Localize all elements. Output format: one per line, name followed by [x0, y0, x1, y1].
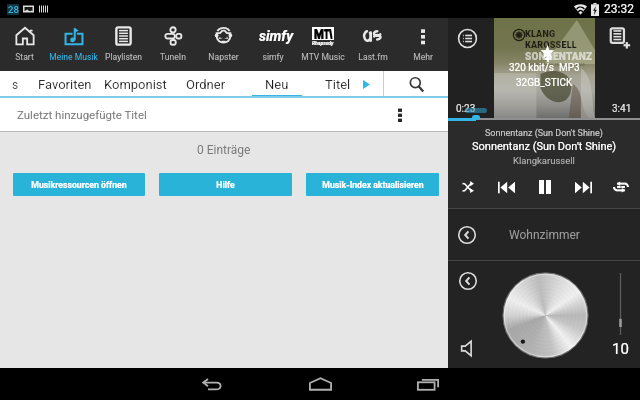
staticText: TuneIn: [160, 52, 186, 62]
button[interactable]: Mehr Optionen: [380, 98, 420, 131]
button[interactable]: Meine Musik: [49, 18, 98, 71]
staticText: Titel: [325, 77, 351, 92]
button[interactable]: Playlisten: [98, 18, 148, 71]
staticText: Favoriten: [38, 77, 92, 92]
button[interactable]: Titel: [312, 71, 383, 98]
staticText: Rhapsody: [312, 40, 334, 46]
staticText: 28: [8, 4, 19, 15]
staticText: 32GB_STICK: [516, 77, 573, 89]
staticText: SUN DON'T SHINE FEAT. WILL HEARD: [525, 63, 586, 67]
button[interactable]: Napster: [198, 18, 248, 71]
button[interactable]: Startseite: [304, 368, 336, 400]
staticText: Sonnentanz (Sun Don't Shine): [485, 128, 603, 139]
staticText: SONNENTANZ: [525, 51, 593, 63]
staticText: Last.fm: [358, 52, 388, 62]
button[interactable]: Zur Playlist hinzufügen: [609, 27, 631, 49]
button[interactable]: Start: [0, 18, 49, 71]
button[interactable]: Musik-Index aktualisieren: [306, 173, 439, 196]
staticText: Wohnzimmer: [509, 228, 580, 242]
staticText: MTV Music: [301, 52, 345, 62]
staticText: 23:32: [604, 2, 634, 16]
staticText: s: [12, 78, 19, 92]
staticText: Hilfe: [216, 180, 235, 190]
staticText: Mehr: [413, 52, 433, 62]
button[interactable]: Hilfe: [159, 173, 292, 196]
button[interactable]: simfy: [248, 18, 298, 71]
staticText: KLANG: [525, 29, 556, 40]
button[interactable]: Komponist: [100, 71, 170, 98]
button[interactable]: Musikressourcen öffnen: [13, 173, 145, 196]
staticText: 0 Einträge: [197, 143, 251, 157]
staticText: 3:41: [612, 103, 632, 115]
staticText: 10: [612, 340, 629, 358]
button[interactable]: TuneIn: [148, 18, 198, 71]
staticText: simfy: [262, 52, 284, 62]
staticText: Klangkarussell: [513, 155, 575, 166]
button[interactable]: Wiederholen: [602, 166, 640, 208]
button[interactable]: Stumm: [461, 341, 472, 356]
button[interactable]: Lautstärke: [502, 272, 589, 359]
staticText: Start: [15, 52, 34, 62]
staticText: 320 kbit/s MP3: [509, 62, 580, 74]
button[interactable]: Vorheriger Titel: [487, 166, 526, 208]
staticText: Playlisten: [105, 52, 142, 62]
button[interactable]: Übersicht: [412, 368, 444, 400]
button[interactable]: Warteschlange: [458, 29, 477, 48]
staticText: Musik-Index aktualisieren: [322, 180, 424, 190]
button[interactable]: Favoriten: [30, 71, 100, 98]
button[interactable]: Zurück: [448, 209, 640, 260]
staticText: Komponist: [104, 77, 167, 92]
staticText: Ordner: [186, 77, 226, 92]
staticText: Meine Musik: [49, 52, 98, 62]
staticText: 0:23: [456, 103, 476, 115]
staticText: Napster: [208, 52, 239, 62]
button[interactable]: Pause: [526, 166, 564, 208]
staticText: Musikressourcen öffnen: [31, 180, 127, 190]
button[interactable]: Zurück: [459, 272, 477, 290]
staticText: Neu: [265, 77, 289, 92]
button[interactable]: Zufallswiedergabe: [448, 166, 487, 208]
button[interactable]: Nächster Titel: [564, 166, 602, 208]
staticText: Zuletzt hinzugefügte Titel: [17, 108, 147, 121]
staticText: simfy: [259, 28, 287, 44]
button[interactable]: Last.fm: [348, 18, 398, 71]
button[interactable]: Ordner: [170, 71, 241, 98]
button[interactable]: Zurück: [458, 226, 476, 244]
button[interactable]: Neu: [241, 71, 312, 98]
button[interactable]: Suche: [384, 71, 448, 98]
button[interactable]: Rhapsody: [298, 18, 348, 71]
button[interactable]: Zurück: [196, 368, 228, 400]
staticText: Sonnentanz (Sun Don't Shine): [472, 140, 617, 153]
staticText: KAROSSELL: [525, 40, 577, 51]
button[interactable]: Mehr: [398, 18, 448, 71]
